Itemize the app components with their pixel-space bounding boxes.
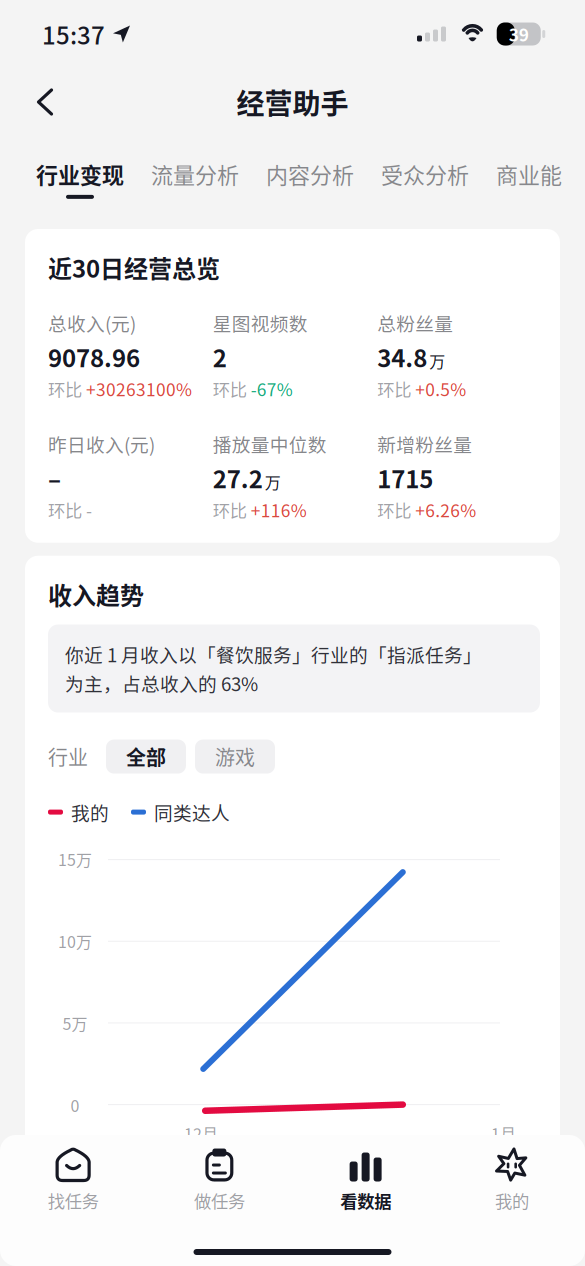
button[interactable]: 找任务 bbox=[0, 1148, 146, 1213]
staticText: 我的 bbox=[71, 799, 109, 826]
staticText: 经营助手 bbox=[236, 82, 348, 122]
staticText: +6.26% bbox=[415, 497, 476, 522]
staticText: 做任务 bbox=[194, 1188, 245, 1213]
staticText: 5万 bbox=[62, 1011, 87, 1035]
staticText: 27.2 bbox=[213, 460, 263, 495]
staticText: 新增粉丝量 bbox=[377, 430, 472, 457]
staticText: - bbox=[86, 497, 92, 522]
staticText: +0.5% bbox=[415, 376, 466, 401]
staticText: 行业变现 bbox=[36, 158, 124, 190]
staticText: 总粉丝量 bbox=[377, 309, 453, 336]
button[interactable]: 全部 bbox=[106, 740, 186, 774]
staticText: 环比 bbox=[377, 497, 411, 522]
staticText: 环比 bbox=[213, 376, 247, 401]
staticText: 我的 bbox=[495, 1188, 529, 1213]
button[interactable]: 商业能 bbox=[496, 158, 562, 190]
staticText: 环比 bbox=[48, 497, 82, 522]
staticText: 行业 bbox=[48, 742, 88, 771]
staticText: 环比 bbox=[377, 376, 411, 401]
staticText: 2 bbox=[213, 339, 227, 374]
staticText: 为主，占总收入的 63% bbox=[65, 669, 258, 696]
button[interactable]: 行业变现 bbox=[36, 158, 124, 199]
staticText: 收入趋势 bbox=[48, 577, 144, 612]
staticText: 内容分析 bbox=[266, 158, 354, 190]
staticText: 受众分析 bbox=[381, 158, 469, 190]
staticText: 昨日收入(元) bbox=[48, 430, 155, 457]
staticText: 环比 bbox=[213, 497, 247, 522]
staticText: 商业能 bbox=[496, 158, 562, 190]
staticText: 全部 bbox=[126, 742, 166, 771]
button[interactable]: 看数据 bbox=[292, 1148, 439, 1213]
staticText: -67% bbox=[251, 376, 293, 401]
staticText: 播放量中位数 bbox=[213, 430, 327, 457]
staticText: 万 bbox=[429, 349, 445, 372]
staticText: 1月 bbox=[491, 1122, 516, 1145]
staticText: 0 bbox=[70, 1093, 79, 1117]
button[interactable]: 我的 bbox=[439, 1148, 585, 1213]
button[interactable]: 返回 bbox=[22, 79, 68, 125]
button[interactable]: 内容分析 bbox=[266, 158, 354, 190]
staticText: 万 bbox=[265, 470, 281, 493]
staticText: 39 bbox=[509, 21, 529, 47]
staticText: – bbox=[48, 460, 61, 495]
staticText: 9078.96 bbox=[48, 339, 140, 374]
staticText: 1715 bbox=[377, 460, 433, 495]
staticText: +116% bbox=[251, 497, 307, 522]
staticText: 10万 bbox=[58, 929, 92, 953]
staticText: 15:37 bbox=[42, 17, 105, 51]
staticText: 12月 bbox=[184, 1122, 218, 1145]
button[interactable]: 游戏 bbox=[195, 740, 275, 774]
button[interactable]: 流量分析 bbox=[151, 158, 239, 190]
staticText: 找任务 bbox=[48, 1188, 99, 1213]
staticText: 34.8 bbox=[377, 339, 427, 374]
staticText: 同类达人 bbox=[154, 799, 230, 826]
staticText: 15万 bbox=[58, 847, 92, 871]
staticText: 总收入(元) bbox=[48, 309, 136, 336]
staticText: 看数据 bbox=[340, 1188, 391, 1213]
button[interactable]: 受众分析 bbox=[381, 158, 469, 190]
staticText: 环比 bbox=[48, 376, 82, 401]
staticText: 你近 1 月收入以「餐饮服务」行业的「指派任务」 bbox=[65, 640, 482, 667]
staticText: 流量分析 bbox=[151, 158, 239, 190]
staticText: 星图视频数 bbox=[213, 309, 308, 336]
button[interactable]: 做任务 bbox=[146, 1148, 292, 1213]
staticText: 游戏 bbox=[215, 742, 255, 771]
staticText: 近30日经营总览 bbox=[48, 250, 220, 285]
staticText: +30263100% bbox=[86, 376, 192, 401]
